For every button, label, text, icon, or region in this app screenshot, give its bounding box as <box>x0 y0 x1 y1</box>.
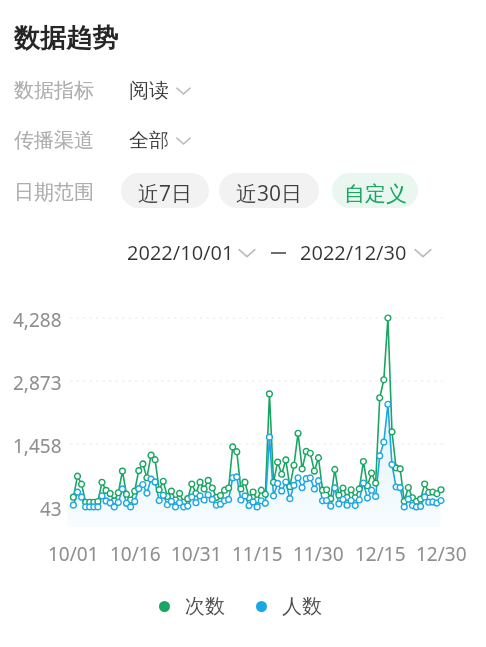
staticText: 数据趋势 <box>14 22 118 55</box>
staticText: 近7日 <box>138 179 193 208</box>
staticText: 10/31 <box>171 541 222 567</box>
staticText: 自定义 <box>344 181 407 207</box>
button[interactable]: 近30日 <box>219 173 319 208</box>
staticText: 数据指标 <box>14 78 94 103</box>
staticText: 1,458 <box>13 433 62 459</box>
staticText: 人数 <box>282 594 322 619</box>
staticText: 阅读 <box>129 78 169 103</box>
staticText: 11/30 <box>293 541 344 567</box>
button[interactable]: 次数 <box>159 589 225 624</box>
staticText: 4,288 <box>13 307 62 333</box>
staticText: 12/15 <box>355 541 406 567</box>
staticText: 12/30 <box>416 541 467 567</box>
staticText: 传播渠道 <box>14 128 94 153</box>
staticText: 2022/12/30 <box>300 239 407 266</box>
button[interactable]: 全部 <box>124 121 196 160</box>
staticText: 11/15 <box>232 541 283 567</box>
staticText: 10/01 <box>48 541 99 567</box>
staticText: 近30日 <box>236 179 303 208</box>
staticText: 43 <box>40 496 62 522</box>
staticText: 2022/10/01 <box>127 239 234 266</box>
button[interactable]: 阅读 <box>124 71 196 110</box>
button[interactable]: 近7日 <box>121 173 209 208</box>
button[interactable]: 2022/10/01 <box>127 234 252 271</box>
button[interactable]: 自定义 <box>332 173 418 208</box>
button[interactable]: 2022/12/30 <box>300 234 425 271</box>
staticText: 全部 <box>129 128 169 153</box>
staticText: 次数 <box>185 594 225 619</box>
staticText: 2,873 <box>13 370 62 396</box>
button[interactable]: 人数 <box>256 589 322 624</box>
staticText: 日期范围 <box>14 180 94 205</box>
staticText: 10/16 <box>110 541 161 567</box>
